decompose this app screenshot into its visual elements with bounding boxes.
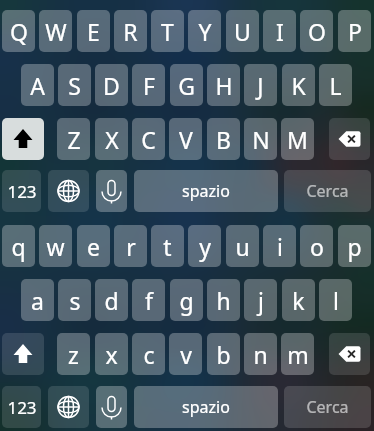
button[interactable]: I [263, 10, 296, 52]
button[interactable]: B [207, 118, 240, 160]
button[interactable]: 123 [2, 170, 41, 212]
button[interactable]: f [132, 279, 165, 321]
button[interactable]: Backspace [329, 118, 370, 160]
staticText: T [161, 16, 174, 47]
button[interactable]: K [282, 64, 315, 106]
button[interactable]: v [169, 333, 202, 375]
button[interactable]: Q [2, 10, 35, 52]
button[interactable]: F [132, 64, 165, 106]
button[interactable]: X [95, 118, 128, 160]
button[interactable]: Dictation [96, 386, 127, 428]
staticText: 123 [7, 396, 37, 419]
button[interactable]: Y [188, 10, 221, 52]
staticText: b [216, 339, 231, 370]
button[interactable]: u [226, 225, 259, 267]
button[interactable]: r [114, 225, 147, 267]
staticText: I [276, 16, 284, 47]
button[interactable]: Z [57, 118, 90, 160]
button[interactable]: s [58, 279, 91, 321]
staticText: X [105, 124, 119, 155]
button[interactable]: P [338, 10, 371, 52]
button[interactable]: d [95, 279, 128, 321]
button[interactable]: o [300, 225, 333, 267]
button[interactable]: N [244, 118, 277, 160]
staticText: m [287, 339, 309, 370]
staticText: 123 [7, 180, 37, 203]
staticText: o [310, 231, 324, 262]
staticText: h [216, 285, 231, 316]
staticText: x [105, 339, 118, 370]
staticText: G [178, 70, 195, 101]
button[interactable]: spazio [134, 386, 278, 428]
staticText: v [180, 339, 192, 370]
button[interactable]: H [207, 64, 240, 106]
staticText: R [123, 16, 138, 47]
staticText: O [308, 16, 326, 47]
button[interactable]: p [338, 225, 371, 267]
button[interactable]: T [151, 10, 184, 52]
staticText: n [253, 339, 268, 370]
button[interactable]: t [151, 225, 184, 267]
staticText: i [277, 231, 283, 262]
button[interactable]: R [114, 10, 147, 52]
button[interactable]: Shift [2, 118, 44, 160]
staticText: spazio [182, 180, 230, 202]
button[interactable]: D [95, 64, 128, 106]
button[interactable]: E [77, 10, 110, 52]
staticText: Z [67, 124, 81, 155]
button[interactable]: Shift [2, 333, 44, 375]
button[interactable]: j [244, 279, 277, 321]
button[interactable]: e [77, 225, 110, 267]
staticText: H [215, 70, 233, 101]
button[interactable]: x [95, 333, 128, 375]
button[interactable]: q [2, 225, 35, 267]
staticText: t [163, 231, 172, 262]
button[interactable]: O [300, 10, 333, 52]
staticText: A [30, 70, 45, 101]
button[interactable]: Cerca [284, 170, 371, 212]
button[interactable]: C [132, 118, 165, 160]
button[interactable]: spazio [134, 170, 278, 212]
staticText: d [104, 285, 119, 316]
button[interactable]: m [281, 333, 314, 375]
button[interactable]: b [207, 333, 240, 375]
button[interactable]: Cerca [284, 386, 371, 428]
button[interactable]: V [169, 118, 202, 160]
button[interactable]: w [39, 225, 72, 267]
button[interactable]: Backspace [329, 333, 370, 375]
staticText: j [258, 285, 264, 316]
button[interactable]: G [170, 64, 203, 106]
button[interactable]: i [263, 225, 296, 267]
staticText: y [199, 231, 211, 262]
button[interactable]: n [244, 333, 277, 375]
staticText: Q [10, 16, 28, 47]
button[interactable]: Next keyboard [48, 170, 89, 212]
staticText: f [145, 285, 153, 316]
staticText: z [68, 339, 79, 370]
button[interactable]: l [319, 279, 352, 321]
button[interactable]: M [281, 118, 314, 160]
button[interactable]: L [319, 64, 352, 106]
button[interactable]: Next keyboard [48, 386, 89, 428]
button[interactable]: U [226, 10, 259, 52]
staticText: U [234, 16, 251, 47]
button[interactable]: z [57, 333, 90, 375]
staticText: V [179, 124, 193, 155]
staticText: W [45, 16, 67, 47]
button[interactable]: a [21, 279, 54, 321]
button[interactable]: W [39, 10, 72, 52]
button[interactable]: h [207, 279, 240, 321]
staticText: s [69, 285, 81, 316]
staticText: Cerca [306, 396, 349, 418]
staticText: p [347, 231, 362, 262]
button[interactable]: A [21, 64, 54, 106]
button[interactable]: y [188, 225, 221, 267]
button[interactable]: c [132, 333, 165, 375]
button[interactable]: g [170, 279, 203, 321]
button[interactable]: 123 [2, 386, 41, 428]
button[interactable]: J [244, 64, 277, 106]
button[interactable]: Dictation [96, 170, 127, 212]
staticText: E [87, 16, 100, 47]
button[interactable]: k [282, 279, 315, 321]
button[interactable]: S [58, 64, 91, 106]
